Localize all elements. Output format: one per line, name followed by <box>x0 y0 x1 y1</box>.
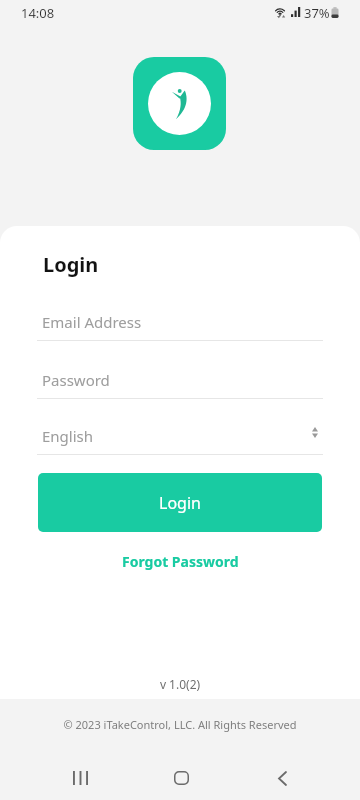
staticText: Password <box>42 370 110 390</box>
staticText: © 2023 iTakeControl, LLC. All Rights Res… <box>0 717 360 732</box>
button[interactable]: Forgot Password <box>0 544 360 578</box>
staticText: 37% <box>304 4 330 22</box>
staticText: Email Address <box>42 312 142 332</box>
staticText: 14:08 <box>21 4 55 22</box>
button[interactable]: Login <box>38 473 322 532</box>
staticText: Login <box>43 251 99 278</box>
staticText: Login <box>159 492 201 514</box>
staticText: Forgot Password <box>122 552 239 571</box>
staticText: v 1.0(2) <box>0 676 360 692</box>
button[interactable]: Recent apps <box>56 759 104 797</box>
button[interactable]: Back <box>258 759 306 797</box>
button[interactable]: Home <box>157 759 205 797</box>
staticText: English <box>42 426 94 446</box>
